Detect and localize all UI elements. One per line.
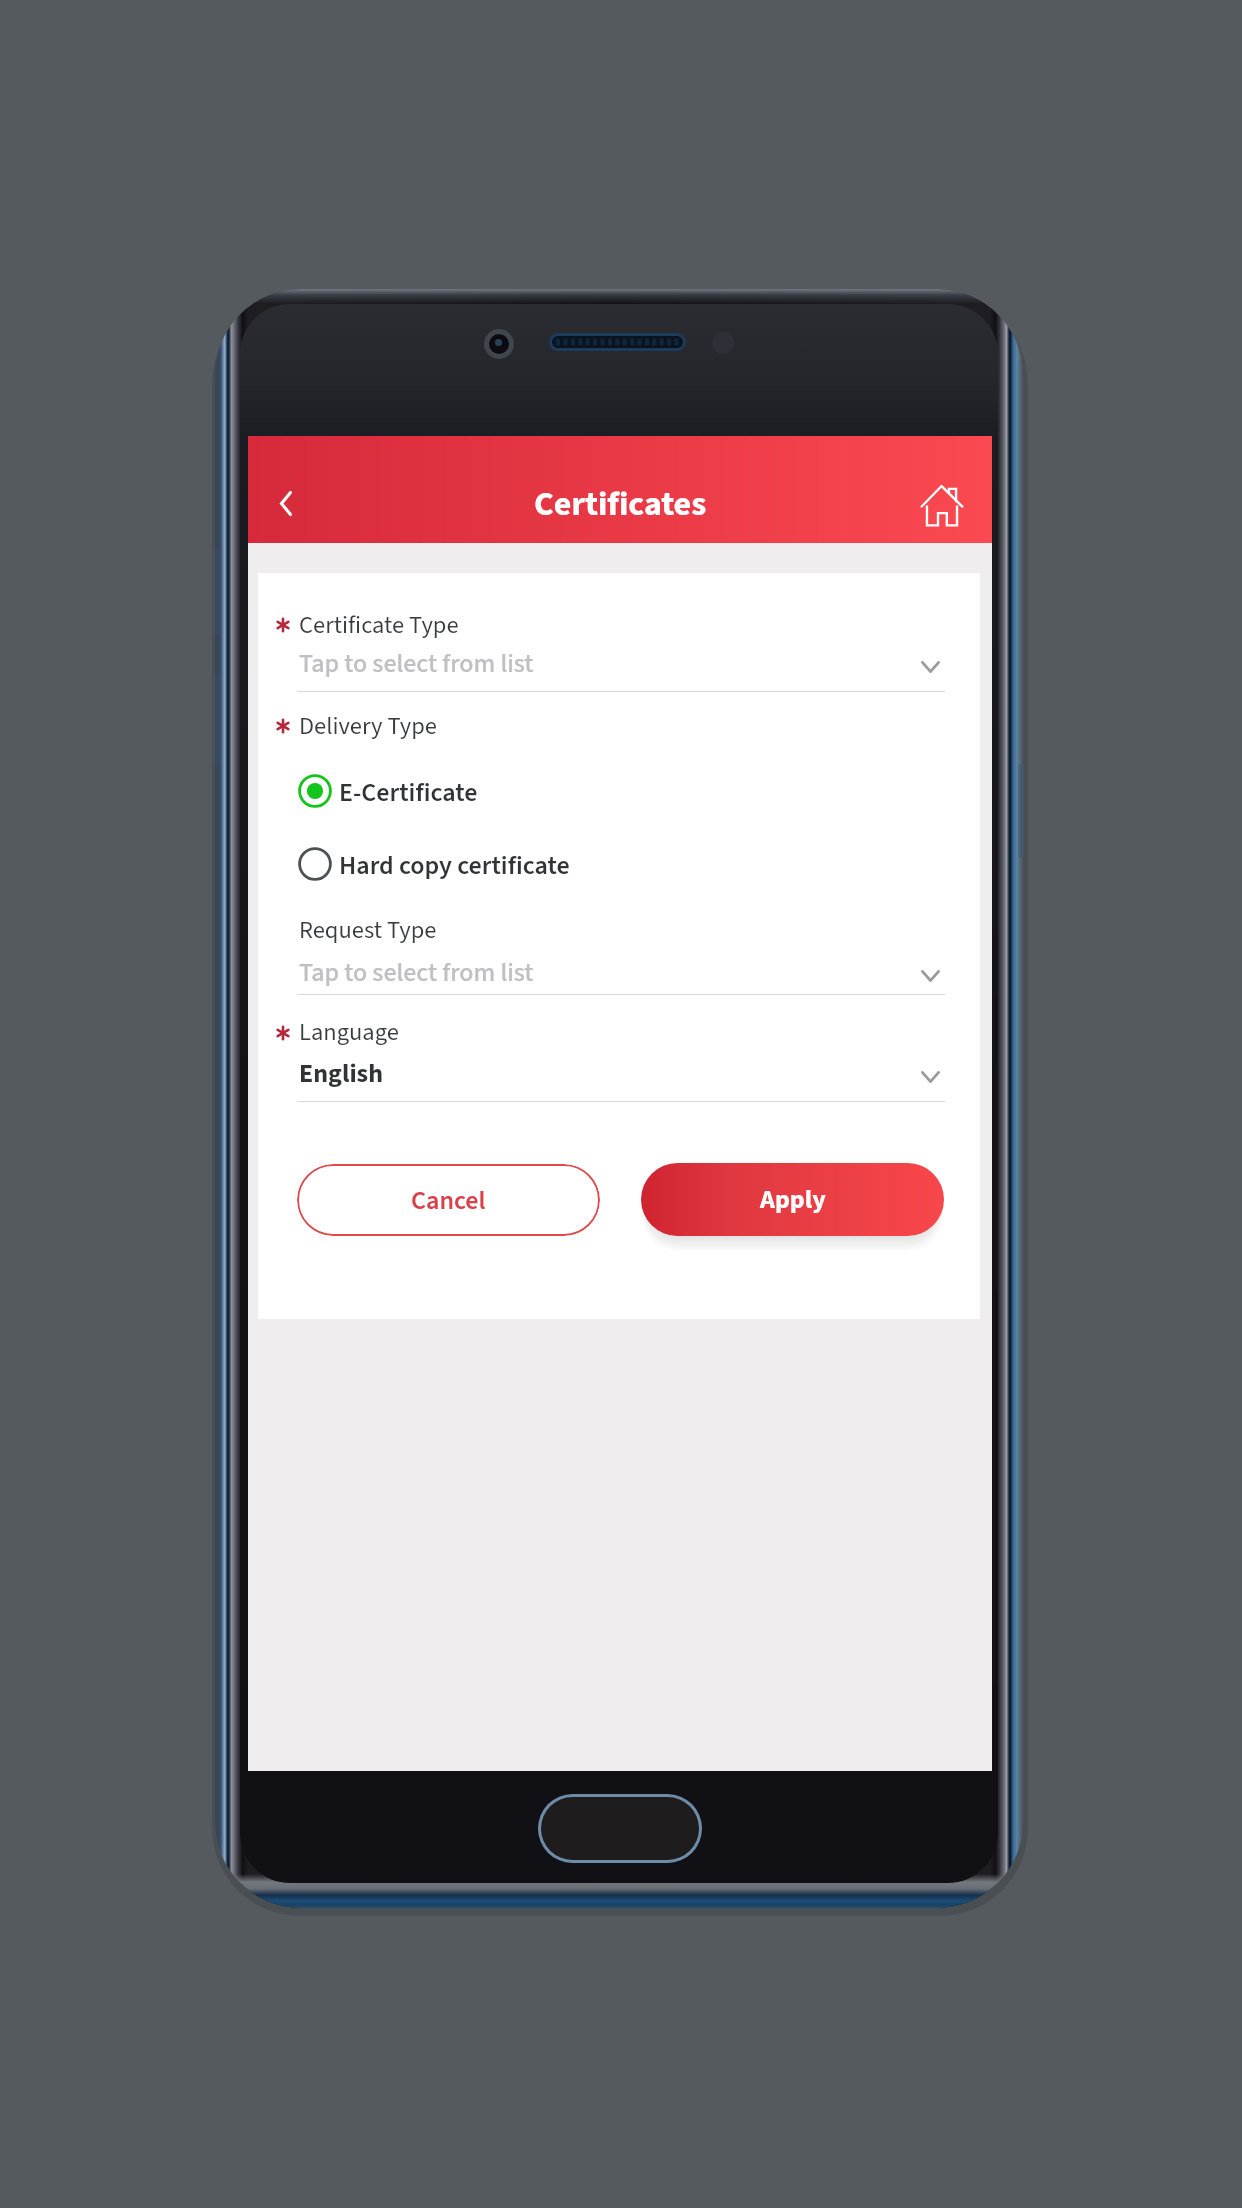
button[interactable]: Cancel <box>297 1164 600 1236</box>
staticText: Cancel <box>411 1182 486 1219</box>
button[interactable]: Tap to select from list <box>296 638 947 694</box>
staticText: Tap to select from list <box>299 645 534 682</box>
button[interactable]: Apply <box>641 1163 944 1236</box>
staticText: Certificates <box>534 480 707 528</box>
staticText: Delivery Type <box>299 709 437 744</box>
button[interactable]: Home <box>910 473 974 537</box>
staticText: Tap to select from list <box>299 954 534 991</box>
button[interactable]: Back <box>252 472 320 534</box>
staticText: Apply <box>760 1181 826 1218</box>
staticText: English <box>299 1055 383 1092</box>
staticText: Hard copy certificate <box>339 847 570 884</box>
button[interactable]: Tap to select from list <box>296 947 947 997</box>
button[interactable]: E-Certificate <box>294 765 714 817</box>
staticText: Request Type <box>299 913 437 948</box>
staticText: Certificate Type <box>299 608 459 643</box>
staticText: Language <box>299 1015 399 1050</box>
button[interactable]: Hard copy certificate <box>294 838 714 890</box>
button[interactable]: English <box>296 1048 947 1104</box>
staticText: E-Certificate <box>339 774 478 811</box>
